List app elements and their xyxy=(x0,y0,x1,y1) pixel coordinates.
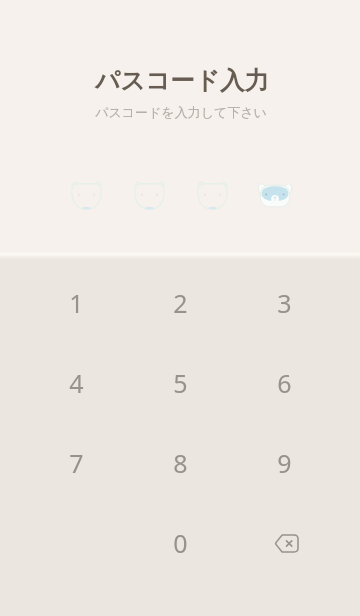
staticText: パスコード入力 xyxy=(2,65,360,96)
other: passcode slot 3 xyxy=(190,173,234,217)
staticText: 8 xyxy=(173,446,188,480)
other: passcode slot 1 xyxy=(64,173,108,217)
staticText: 2 xyxy=(173,286,188,320)
button[interactable]: 4 xyxy=(39,346,113,420)
staticText: 3 xyxy=(277,286,292,320)
other: passcode slot 4 xyxy=(253,173,297,217)
staticText: 0 xyxy=(173,526,188,560)
staticText: 1 xyxy=(69,286,84,320)
button[interactable]: 5 xyxy=(143,346,217,420)
staticText: パスコードを入力して下さい xyxy=(1,104,360,120)
button[interactable]: 8 xyxy=(143,426,217,500)
button[interactable]: 7 xyxy=(39,426,113,500)
other: passcode slot 2 xyxy=(127,173,171,217)
button[interactable]: 3 xyxy=(247,266,321,340)
button[interactable]: 0 xyxy=(143,506,217,580)
button[interactable]: 6 xyxy=(247,346,321,420)
staticText: 5 xyxy=(173,366,188,400)
staticText: 9 xyxy=(277,446,292,480)
button[interactable]: 9 xyxy=(247,426,321,500)
button[interactable]: Delete xyxy=(249,506,323,580)
button[interactable]: 1 xyxy=(39,266,113,340)
button[interactable]: 2 xyxy=(143,266,217,340)
staticText: 6 xyxy=(277,366,292,400)
staticText: 7 xyxy=(69,446,84,480)
staticText: 4 xyxy=(69,366,84,400)
